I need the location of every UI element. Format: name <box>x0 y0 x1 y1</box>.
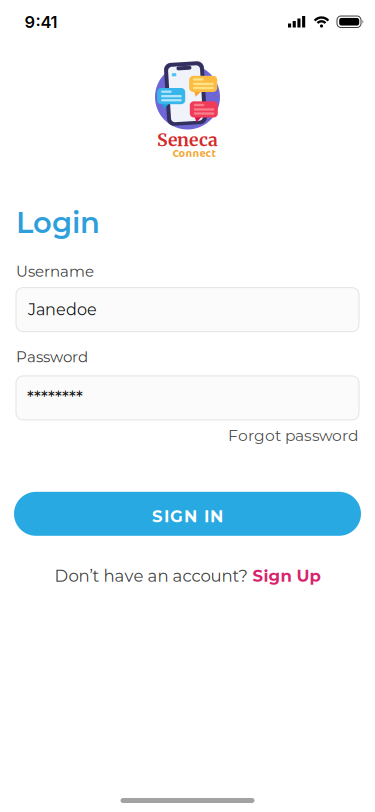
staticText: Seneca <box>157 129 218 151</box>
button[interactable]: SIGN IN <box>14 492 361 536</box>
staticText: Forgot password <box>228 426 359 445</box>
staticText: Don’t have an account? <box>54 566 247 586</box>
staticText: Password <box>16 348 88 366</box>
staticText: Connect <box>172 144 215 163</box>
button[interactable]: Forgot password <box>228 426 359 445</box>
staticText: Janedoe <box>28 300 97 319</box>
button[interactable]: Sign Up <box>252 566 320 586</box>
staticText: Sign Up <box>252 566 320 586</box>
staticText: SIGN IN <box>152 506 223 526</box>
button[interactable]: Janedoe <box>16 288 359 332</box>
staticText: Login <box>16 205 100 240</box>
staticText: 9:41 <box>24 12 57 32</box>
staticText: ******** <box>27 386 83 407</box>
button[interactable]: ******** <box>16 376 359 420</box>
staticText: Username <box>16 262 94 281</box>
